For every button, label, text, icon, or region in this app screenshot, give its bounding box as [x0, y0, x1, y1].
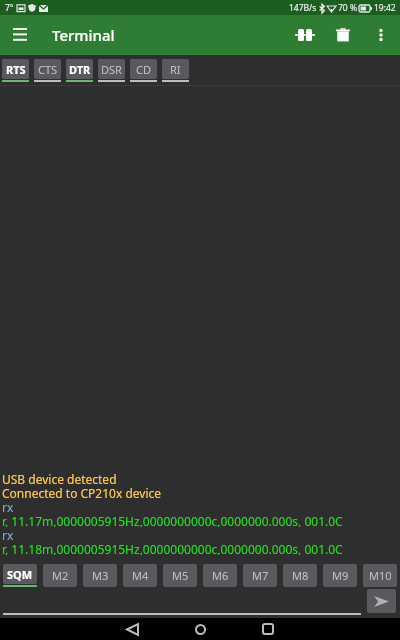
staticText: DSR	[101, 62, 122, 77]
button[interactable]: M9	[323, 564, 357, 587]
button[interactable]: M3	[83, 564, 117, 587]
staticText: M3	[92, 568, 109, 583]
button[interactable]: M10	[363, 564, 397, 587]
staticText: 19:42	[374, 2, 396, 14]
staticText: M9	[332, 568, 349, 583]
button[interactable]: DSR	[98, 59, 125, 82]
staticText: rx	[2, 499, 14, 513]
staticText: 70 %	[338, 2, 357, 14]
staticText: M6	[212, 568, 229, 583]
button[interactable]: CTS	[34, 59, 61, 82]
button[interactable]: M4	[123, 564, 157, 587]
button[interactable]: Back	[110, 618, 154, 640]
button[interactable]: Recents	[246, 618, 290, 640]
staticText: rx	[2, 527, 14, 541]
button[interactable]: RTS	[2, 59, 29, 82]
button[interactable]: M6	[203, 564, 237, 587]
staticText: RI	[170, 62, 181, 77]
button[interactable]: CD	[130, 59, 157, 82]
staticText: 147B/s	[289, 2, 317, 14]
button[interactable]: RI	[162, 59, 189, 82]
button[interactable]: M8	[283, 564, 317, 587]
button[interactable]: More options	[362, 16, 400, 54]
staticText: 7°	[5, 2, 14, 14]
button[interactable]: Delete	[324, 16, 362, 54]
staticText: M7	[252, 568, 269, 583]
button[interactable]: M5	[163, 564, 197, 587]
button[interactable]: DTR	[66, 59, 93, 82]
staticText: M4	[132, 568, 149, 583]
staticText: DTR	[69, 62, 91, 77]
button[interactable]: Menu	[0, 15, 40, 55]
button[interactable]: M2	[43, 564, 77, 587]
staticText: M10	[369, 568, 392, 583]
staticText: Connected to CP210x device	[2, 485, 162, 499]
button[interactable]: Home	[178, 618, 222, 640]
staticText: M8	[292, 568, 309, 583]
staticText: USB device detected	[2, 471, 117, 485]
staticText: r, 11.17m,0000005915Hz,0000000000c,00000…	[2, 513, 343, 527]
button[interactable]: SQM	[3, 564, 37, 587]
staticText: M5	[172, 568, 189, 583]
button[interactable]: Send	[367, 589, 396, 613]
staticText: SQM	[7, 567, 33, 582]
staticText: r, 11.18m,0000005915Hz,0000000000c,00000…	[2, 541, 343, 555]
staticText: CD	[136, 62, 151, 77]
button[interactable]: M7	[243, 564, 277, 587]
button[interactable]: Connect	[286, 16, 324, 54]
staticText: RTS	[6, 62, 26, 77]
staticText: M2	[52, 568, 69, 583]
staticText: Terminal	[52, 25, 115, 45]
staticText: CTS	[38, 62, 58, 77]
